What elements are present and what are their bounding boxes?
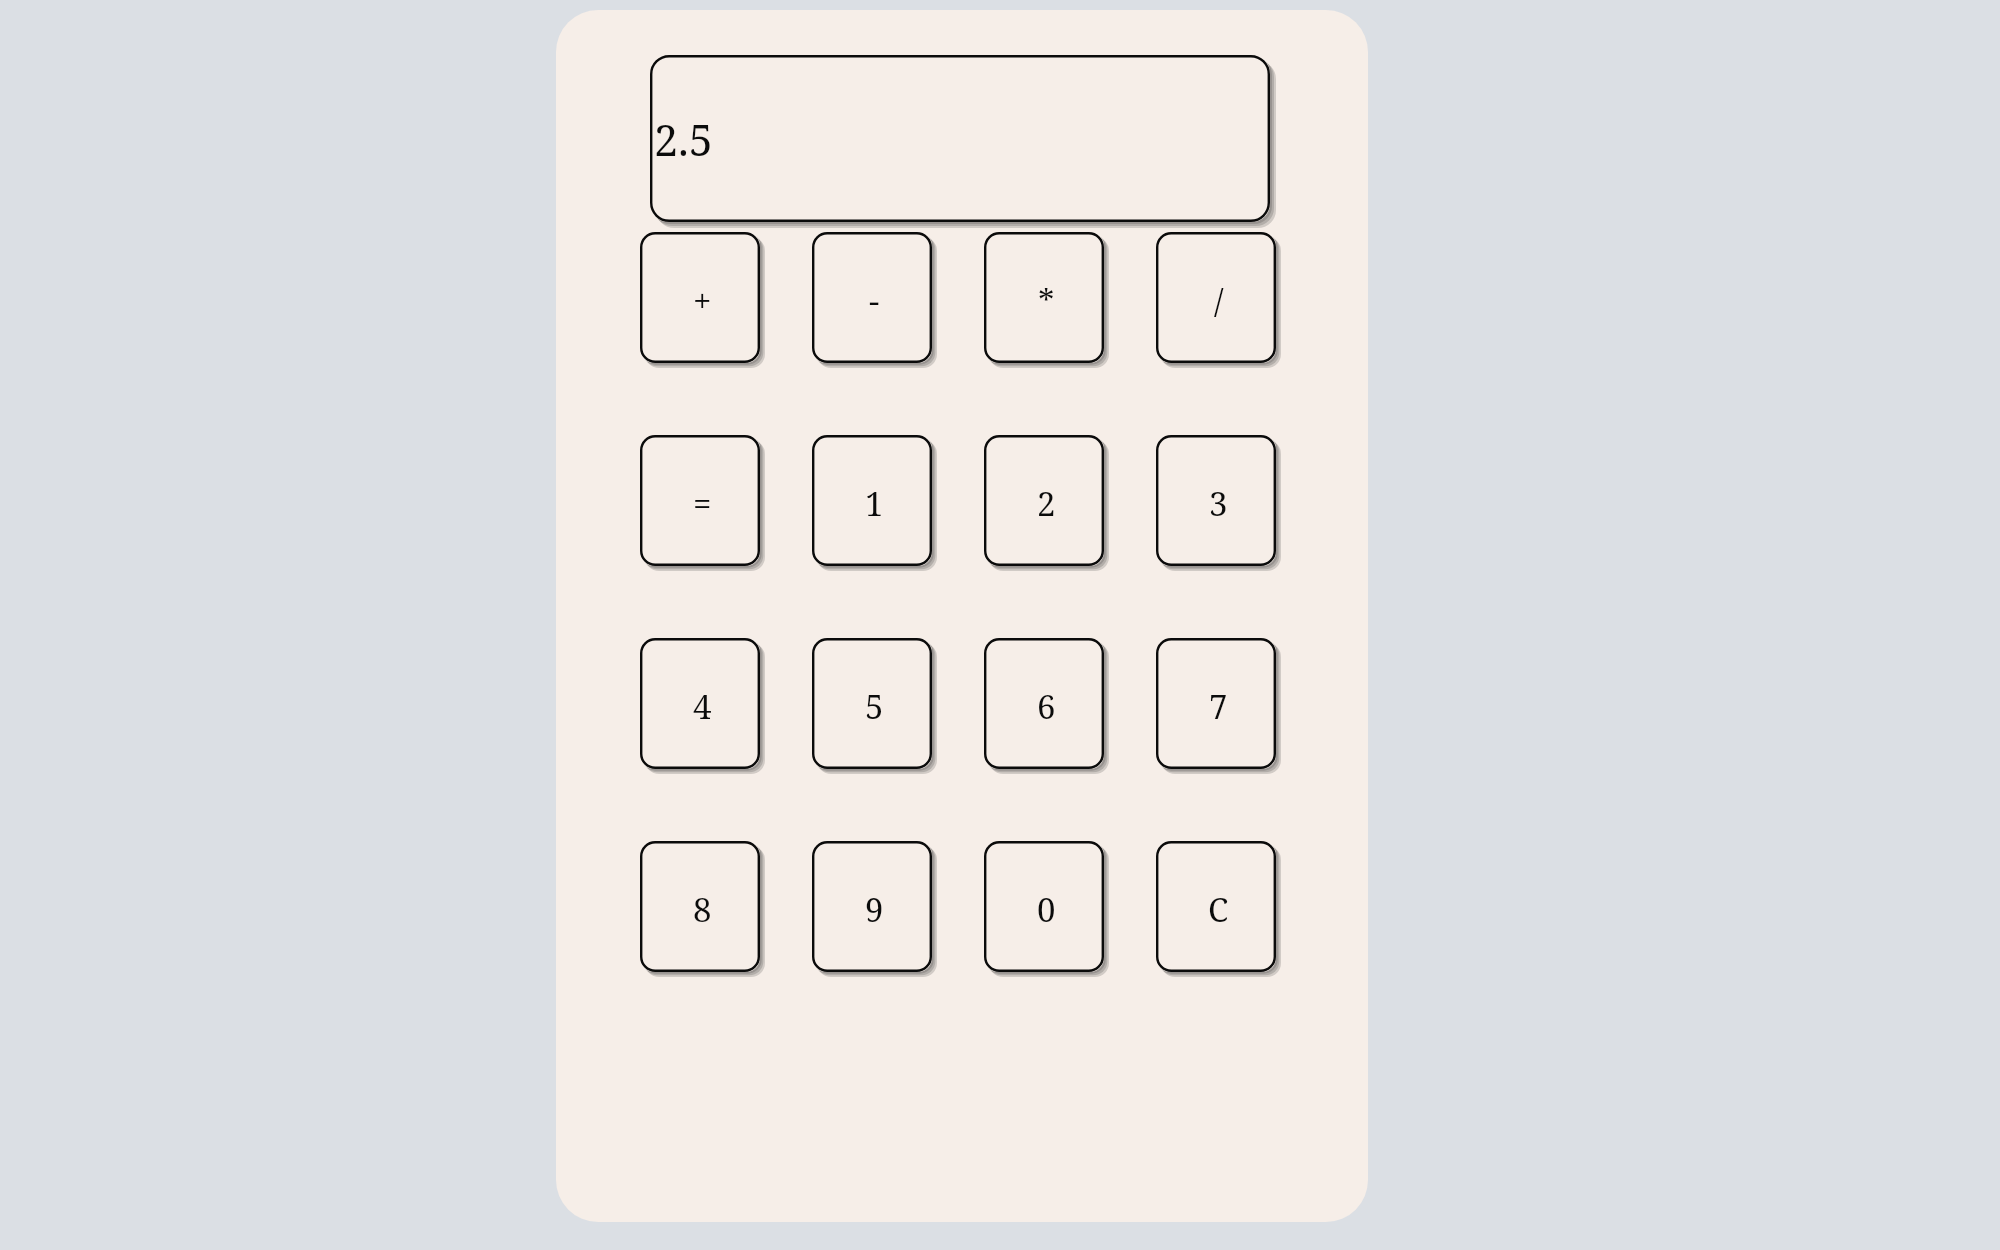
staticText: + [693,278,712,323]
button[interactable]: C [1156,841,1281,977]
staticText: 5 [865,684,884,729]
staticText: 0 [1037,887,1056,932]
staticText: 2 [1037,481,1056,526]
staticText: 7 [1209,684,1228,729]
button[interactable]: 7 [1156,638,1281,774]
staticText: - [869,278,880,323]
staticText: 4 [693,684,712,729]
staticText: 8 [693,887,712,932]
staticText: / [1214,278,1224,323]
button[interactable]: 0 [984,841,1109,977]
button[interactable]: 2 [984,435,1109,571]
button[interactable]: + [640,232,765,368]
button[interactable]: * [984,232,1109,368]
button[interactable]: - [812,232,937,368]
button[interactable]: 3 [1156,435,1281,571]
staticText: 1 [865,481,884,526]
staticText: C [1208,887,1229,932]
button[interactable]: 9 [812,841,937,977]
button[interactable]: 6 [984,638,1109,774]
button[interactable]: 2.5 [650,55,1276,228]
staticText: 3 [1209,481,1228,526]
button[interactable]: 4 [640,638,765,774]
staticText: 2.5 [654,110,713,169]
button[interactable]: 8 [640,841,765,977]
button[interactable]: / [1156,232,1281,368]
staticText: 9 [865,887,884,932]
staticText: = [693,481,712,526]
button[interactable]: 1 [812,435,937,571]
button[interactable]: = [640,435,765,571]
staticText: * [1038,278,1055,323]
button[interactable]: 5 [812,638,937,774]
staticText: 6 [1037,684,1056,729]
